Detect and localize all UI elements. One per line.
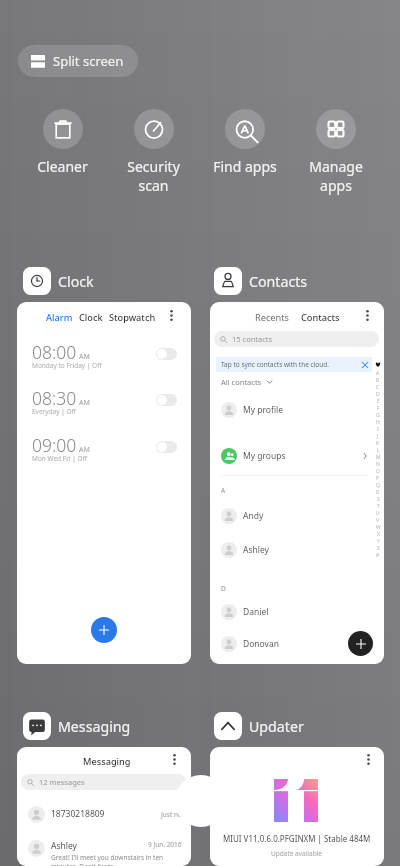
staticText: Daniel: [243, 606, 269, 618]
staticText: O: [376, 468, 380, 475]
button[interactable]: Donovan: [210, 632, 384, 656]
staticText: V: [376, 517, 380, 524]
staticText: X: [377, 531, 380, 538]
button[interactable]: Messaging: [23, 712, 131, 740]
button[interactable]: Clock: [79, 311, 103, 324]
staticText: Ashley: [243, 544, 269, 556]
staticText: Updater: [249, 717, 304, 736]
staticText: 12 messages: [39, 777, 85, 787]
staticText: U: [376, 510, 380, 517]
button[interactable]: 18730218809: [17, 804, 191, 824]
staticText: 18730218809: [51, 808, 105, 820]
staticText: Everyday | Off: [32, 407, 77, 416]
button[interactable]: Manage apps: [290, 109, 381, 195]
staticText: All contacts: [221, 377, 262, 387]
staticText: Monday to Friday | Off: [32, 361, 102, 370]
button[interactable]: Tap to sync contacts with the cloud.: [216, 357, 372, 372]
staticText: R: [376, 489, 380, 496]
staticText: Tap to sync contacts with the cloud.: [221, 360, 330, 369]
staticText: Find apps: [213, 157, 277, 176]
staticText: Contacts: [249, 272, 308, 291]
staticText: N: [376, 461, 380, 468]
button[interactable]: More options: [167, 751, 181, 767]
button[interactable]: 12 messages: [21, 774, 186, 790]
staticText: B: [376, 377, 380, 384]
staticText: #: [376, 552, 380, 559]
button[interactable]: Ashley: [17, 840, 191, 866]
staticText: P: [376, 475, 380, 482]
button[interactable]: Contacts: [214, 267, 308, 295]
button[interactable]: Add alarm: [91, 617, 117, 643]
staticText: F: [377, 405, 380, 412]
button[interactable]: Security scan: [108, 109, 199, 195]
button[interactable]: My profile: [210, 398, 384, 422]
staticText: Z: [377, 545, 380, 552]
staticText: 15 contacts: [232, 334, 273, 344]
staticText: D: [376, 391, 380, 398]
staticText: A: [221, 486, 226, 495]
button[interactable]: Messaging: [83, 755, 131, 768]
button[interactable]: Ashley: [210, 538, 384, 562]
staticText: Donovan: [243, 638, 279, 650]
staticText: Andy: [243, 510, 264, 522]
staticText: D: [221, 584, 226, 593]
staticText: H: [376, 419, 380, 426]
staticText: AM: [79, 445, 90, 455]
staticText: G: [376, 412, 380, 419]
button[interactable]: Andy: [210, 504, 384, 528]
button[interactable]: More options: [361, 751, 375, 767]
staticText: Q: [376, 482, 380, 489]
button[interactable]: Toggle alarm: [156, 394, 177, 406]
button[interactable]: More options: [360, 307, 374, 323]
button[interactable]: Stopwatch: [109, 311, 156, 324]
staticText: T: [377, 503, 380, 510]
button[interactable]: Add contact: [348, 631, 373, 656]
button[interactable]: Split screen: [18, 45, 138, 77]
staticText: Y: [377, 538, 380, 545]
other: Contacts: [214, 267, 242, 295]
other: Clock: [23, 267, 51, 295]
staticText: Just no: [161, 810, 182, 819]
button[interactable]: Alarm: [46, 311, 73, 324]
staticText: Ashley: [51, 840, 77, 852]
button[interactable]: Clock: [23, 267, 94, 295]
button[interactable]: Contacts: [301, 311, 340, 324]
staticText: E: [377, 398, 380, 405]
button[interactable]: My groups: [210, 444, 384, 468]
staticText: 09:00: [32, 433, 77, 457]
staticText: Cleaner: [37, 157, 88, 176]
staticText: I: [377, 426, 379, 433]
staticText: Manage apps: [309, 157, 363, 195]
button[interactable]: Find apps: [199, 109, 290, 176]
staticText: AM: [79, 398, 90, 408]
staticText: Messaging: [58, 717, 131, 736]
staticText: 9 Jun. 2016: [148, 840, 182, 849]
button[interactable]: 15 contacts: [214, 331, 379, 347]
other: Messaging: [23, 712, 51, 740]
staticText: J: [377, 433, 379, 440]
staticText: K: [376, 440, 380, 447]
staticText: W: [376, 524, 381, 531]
staticText: My groups: [243, 450, 286, 462]
button[interactable]: Toggle alarm: [156, 441, 177, 453]
button[interactable]: Cleaner: [17, 109, 108, 176]
button[interactable]: Recents: [255, 311, 289, 324]
button[interactable]: Toggle alarm: [156, 348, 177, 360]
staticText: Split screen: [53, 52, 124, 70]
staticText: MIUI V11.0.6.0.PFGINXM | Stable 484M: [223, 833, 371, 844]
staticText: AM: [79, 352, 90, 362]
other: Updater: [214, 712, 242, 740]
staticText: S: [377, 496, 380, 503]
staticText: 08:00: [32, 340, 77, 364]
staticText: Great! I'll meet you downstairs in ten m…: [51, 853, 182, 866]
staticText: L: [377, 447, 380, 454]
staticText: Update available: [271, 849, 323, 858]
staticText: C: [376, 384, 380, 391]
staticText: Security scan: [127, 157, 180, 195]
button[interactable]: Updater: [214, 712, 304, 740]
button[interactable]: Daniel: [210, 600, 384, 624]
staticText: Clock: [58, 272, 94, 291]
staticText: 08:30: [32, 386, 77, 410]
button[interactable]: More options: [164, 307, 178, 323]
staticText: A: [376, 370, 380, 377]
